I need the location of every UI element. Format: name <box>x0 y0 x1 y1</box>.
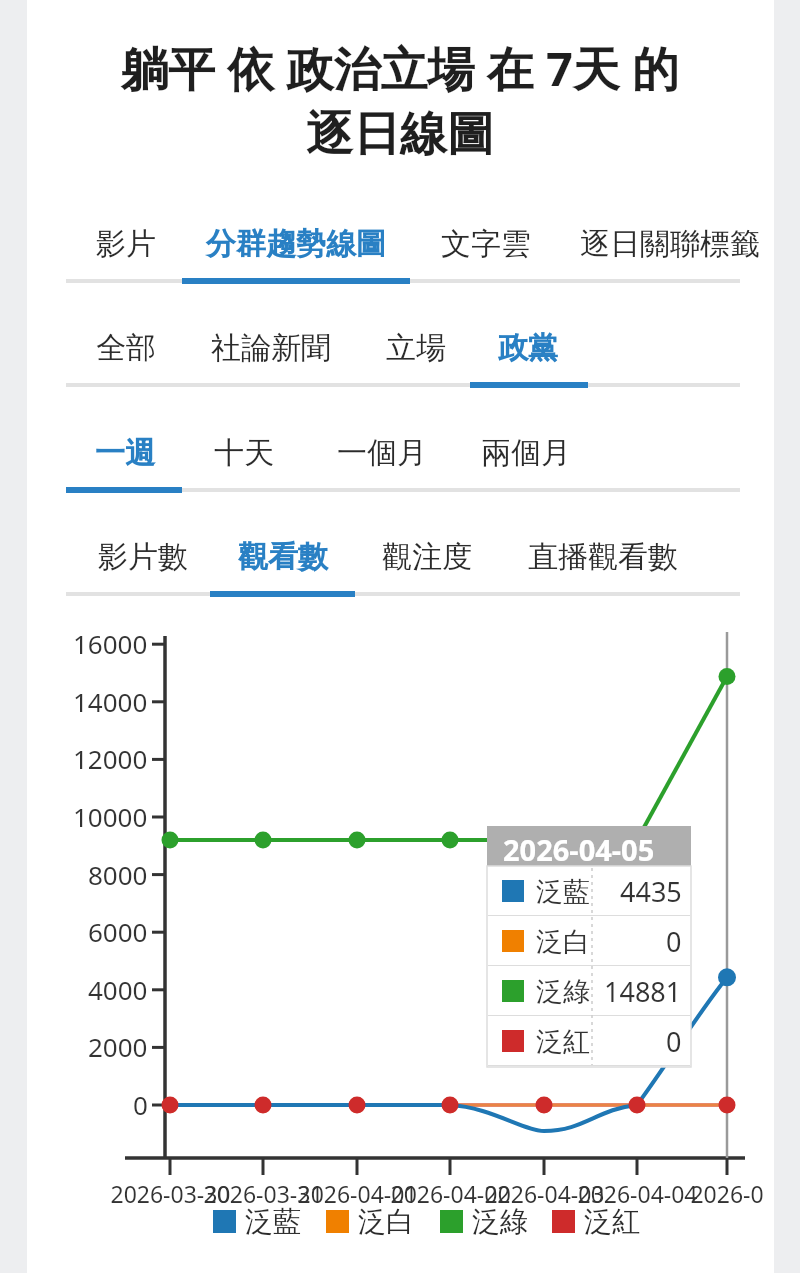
button[interactable]: 一週 <box>66 418 184 488</box>
staticText: 直播觀看數 <box>528 538 678 576</box>
staticText: 14000 <box>73 684 148 719</box>
staticText: 全部 <box>96 329 156 367</box>
staticText: 影片數 <box>98 538 188 576</box>
staticText: 泛紅 <box>584 1204 640 1239</box>
staticText: 4000 <box>88 972 148 1007</box>
staticText: 觀注度 <box>382 538 472 576</box>
staticText: 躺平 依 政治立場 在 7天 的 逐日線圖 <box>58 36 742 164</box>
button[interactable]: 政黨 <box>478 312 578 383</box>
button[interactable]: 立場 <box>366 312 466 383</box>
staticText: 6000 <box>88 914 148 949</box>
staticText: 2026-03-31 <box>203 1178 324 1209</box>
staticText: 16000 <box>73 626 148 661</box>
staticText: 2026-04-03 <box>484 1178 605 1209</box>
staticText: 泛藍 <box>536 875 590 909</box>
button[interactable]: 觀看數 <box>210 522 356 592</box>
staticText: 泛綠 <box>536 975 590 1009</box>
staticText: 泛綠 <box>472 1204 528 1239</box>
staticText: 2026-04-05 <box>503 830 655 869</box>
staticText: 8000 <box>88 857 148 892</box>
staticText: 社論新聞 <box>211 329 331 367</box>
staticText: 泛白 <box>358 1204 414 1239</box>
staticText: 2026-0 <box>690 1178 764 1209</box>
staticText: 2026-04-04 <box>577 1178 698 1209</box>
button[interactable]: 文字雲 <box>424 208 548 279</box>
staticText: 14881 <box>604 973 682 1010</box>
button[interactable]: 逐日關聯標籤 <box>572 208 768 279</box>
staticText: 立場 <box>386 329 446 367</box>
staticText: 文字雲 <box>441 225 531 263</box>
button[interactable]: 泛紅 <box>552 1204 640 1239</box>
button[interactable]: 一個月 <box>314 418 450 488</box>
button[interactable]: 直播觀看數 <box>506 522 700 592</box>
button[interactable]: 影片數 <box>76 522 210 592</box>
staticText: 10000 <box>73 799 148 834</box>
staticText: 分群趨勢線圖 <box>206 225 386 263</box>
button[interactable]: 泛白 <box>326 1204 414 1239</box>
staticText: 兩個月 <box>481 434 571 472</box>
button[interactable]: 社論新聞 <box>194 312 348 383</box>
button[interactable]: 全部 <box>76 312 176 383</box>
staticText: 泛紅 <box>536 1025 590 1059</box>
staticText: 12000 <box>73 741 148 776</box>
staticText: 影片 <box>96 225 156 263</box>
button[interactable]: 影片 <box>78 208 174 279</box>
staticText: 逐日關聯標籤 <box>580 225 760 263</box>
staticText: 0 <box>666 923 682 960</box>
staticText: 泛藍 <box>245 1204 301 1239</box>
staticText: 2026-04-02 <box>390 1178 511 1209</box>
staticText: 0 <box>666 1023 682 1060</box>
staticText: 2026-04-01 <box>297 1178 418 1209</box>
staticText: 0 <box>133 1087 148 1122</box>
staticText: 2026-03-30 <box>110 1178 231 1209</box>
button[interactable]: 泛藍 <box>213 1204 301 1239</box>
staticText: 一週 <box>95 434 155 472</box>
button[interactable]: 泛綠 <box>440 1204 528 1239</box>
staticText: 4435 <box>620 873 682 910</box>
staticText: 泛白 <box>536 925 590 959</box>
staticText: 一個月 <box>337 434 427 472</box>
button[interactable]: 十天 <box>192 418 296 488</box>
staticText: 2000 <box>88 1029 148 1064</box>
button[interactable]: 觀注度 <box>360 522 494 592</box>
button[interactable]: 兩個月 <box>458 418 594 488</box>
staticText: 十天 <box>214 434 274 472</box>
staticText: 政黨 <box>498 329 558 367</box>
button[interactable]: 分群趨勢線圖 <box>182 208 410 279</box>
staticText: 觀看數 <box>238 538 328 576</box>
